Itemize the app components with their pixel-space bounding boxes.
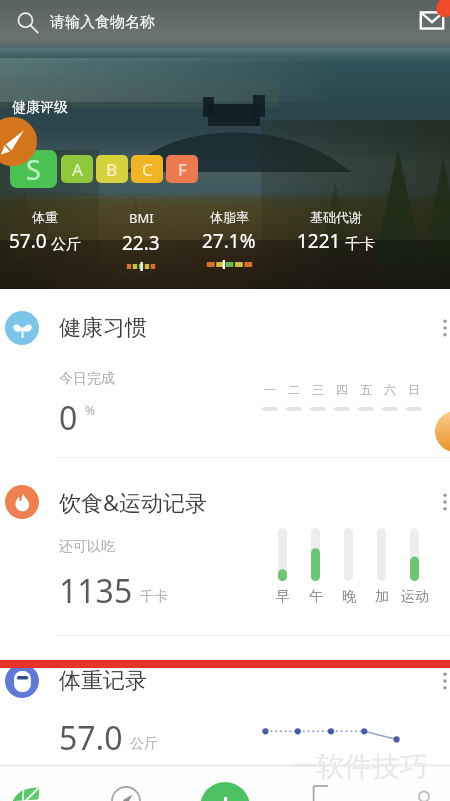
button[interactable]: Discover	[97, 772, 155, 801]
staticText: 二	[288, 382, 300, 397]
staticText: S	[26, 151, 41, 188]
staticText: 今日完成	[59, 370, 115, 388]
button[interactable]: B	[96, 155, 128, 183]
staticText: 体重记录	[59, 667, 147, 695]
button[interactable]: Search	[12, 7, 42, 37]
staticText: 22.3	[122, 230, 160, 256]
staticText: A	[72, 158, 83, 181]
button[interactable]: F	[166, 155, 198, 183]
staticText: BMI	[129, 209, 154, 227]
staticText: 六	[384, 382, 396, 397]
button[interactable]: C	[131, 155, 163, 183]
staticText: 五	[360, 382, 372, 397]
staticText: 早	[276, 588, 290, 606]
staticText: 四	[336, 382, 348, 397]
button[interactable]: 健康习惯	[0, 306, 450, 350]
staticText: 1135	[59, 569, 133, 613]
staticText: %	[85, 402, 95, 418]
staticText: 日	[408, 382, 420, 397]
staticText: 健康习惯	[59, 314, 147, 342]
staticText: 千卡	[140, 588, 168, 606]
staticText: 还可以吃	[59, 538, 115, 556]
staticText: 公斤	[130, 735, 158, 753]
button[interactable]: 体重记录	[0, 659, 450, 703]
staticText: C	[142, 158, 153, 181]
button[interactable]: Habit options	[440, 313, 450, 343]
button[interactable]: Add habit	[435, 411, 450, 452]
button[interactable]: Community	[296, 772, 354, 801]
button[interactable]: A	[61, 155, 93, 183]
staticText: 请输入食物名称	[50, 13, 155, 32]
staticText: 1221	[297, 228, 341, 254]
button[interactable]: 饮食&运动记录	[0, 480, 450, 524]
staticText: 体重	[32, 209, 58, 225]
staticText: 27.1%	[202, 228, 256, 254]
button[interactable]: Health rating award	[0, 117, 37, 166]
staticText: 基础代谢	[310, 209, 362, 225]
staticText: 57.0	[59, 716, 123, 760]
button[interactable]: S	[10, 150, 57, 188]
staticText: 三	[312, 382, 324, 397]
staticText: 57.0	[9, 228, 47, 254]
button[interactable]: Profile	[395, 776, 450, 801]
staticText: 一	[264, 382, 276, 397]
staticText: 体脂率	[210, 209, 249, 225]
staticText: 晚	[342, 588, 356, 606]
staticText: 0	[59, 396, 78, 440]
staticText: 运动	[401, 588, 429, 606]
staticText: 软件技巧	[316, 749, 428, 784]
button[interactable]: Messages	[418, 2, 450, 42]
button[interactable]: Home	[0, 772, 54, 801]
staticText: B	[106, 158, 118, 181]
staticText: F	[178, 158, 187, 181]
staticText: 午	[309, 588, 323, 606]
staticText: 饮食&运动记录	[59, 487, 208, 517]
staticText: 加	[375, 588, 389, 606]
staticText: 千卡	[345, 235, 375, 254]
button[interactable]: Weight options	[440, 666, 450, 696]
staticText: 健康评级	[12, 99, 68, 117]
button[interactable]: Add record	[200, 782, 250, 801]
staticText: 公斤	[51, 235, 81, 254]
button[interactable]: Diet options	[440, 487, 450, 517]
